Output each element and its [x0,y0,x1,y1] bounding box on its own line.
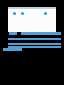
button[interactable]: Item one [13,12,16,15]
button[interactable]: Item two [21,12,24,15]
button[interactable]: Item one [8,7,56,32]
button[interactable]: Item three [44,12,47,15]
